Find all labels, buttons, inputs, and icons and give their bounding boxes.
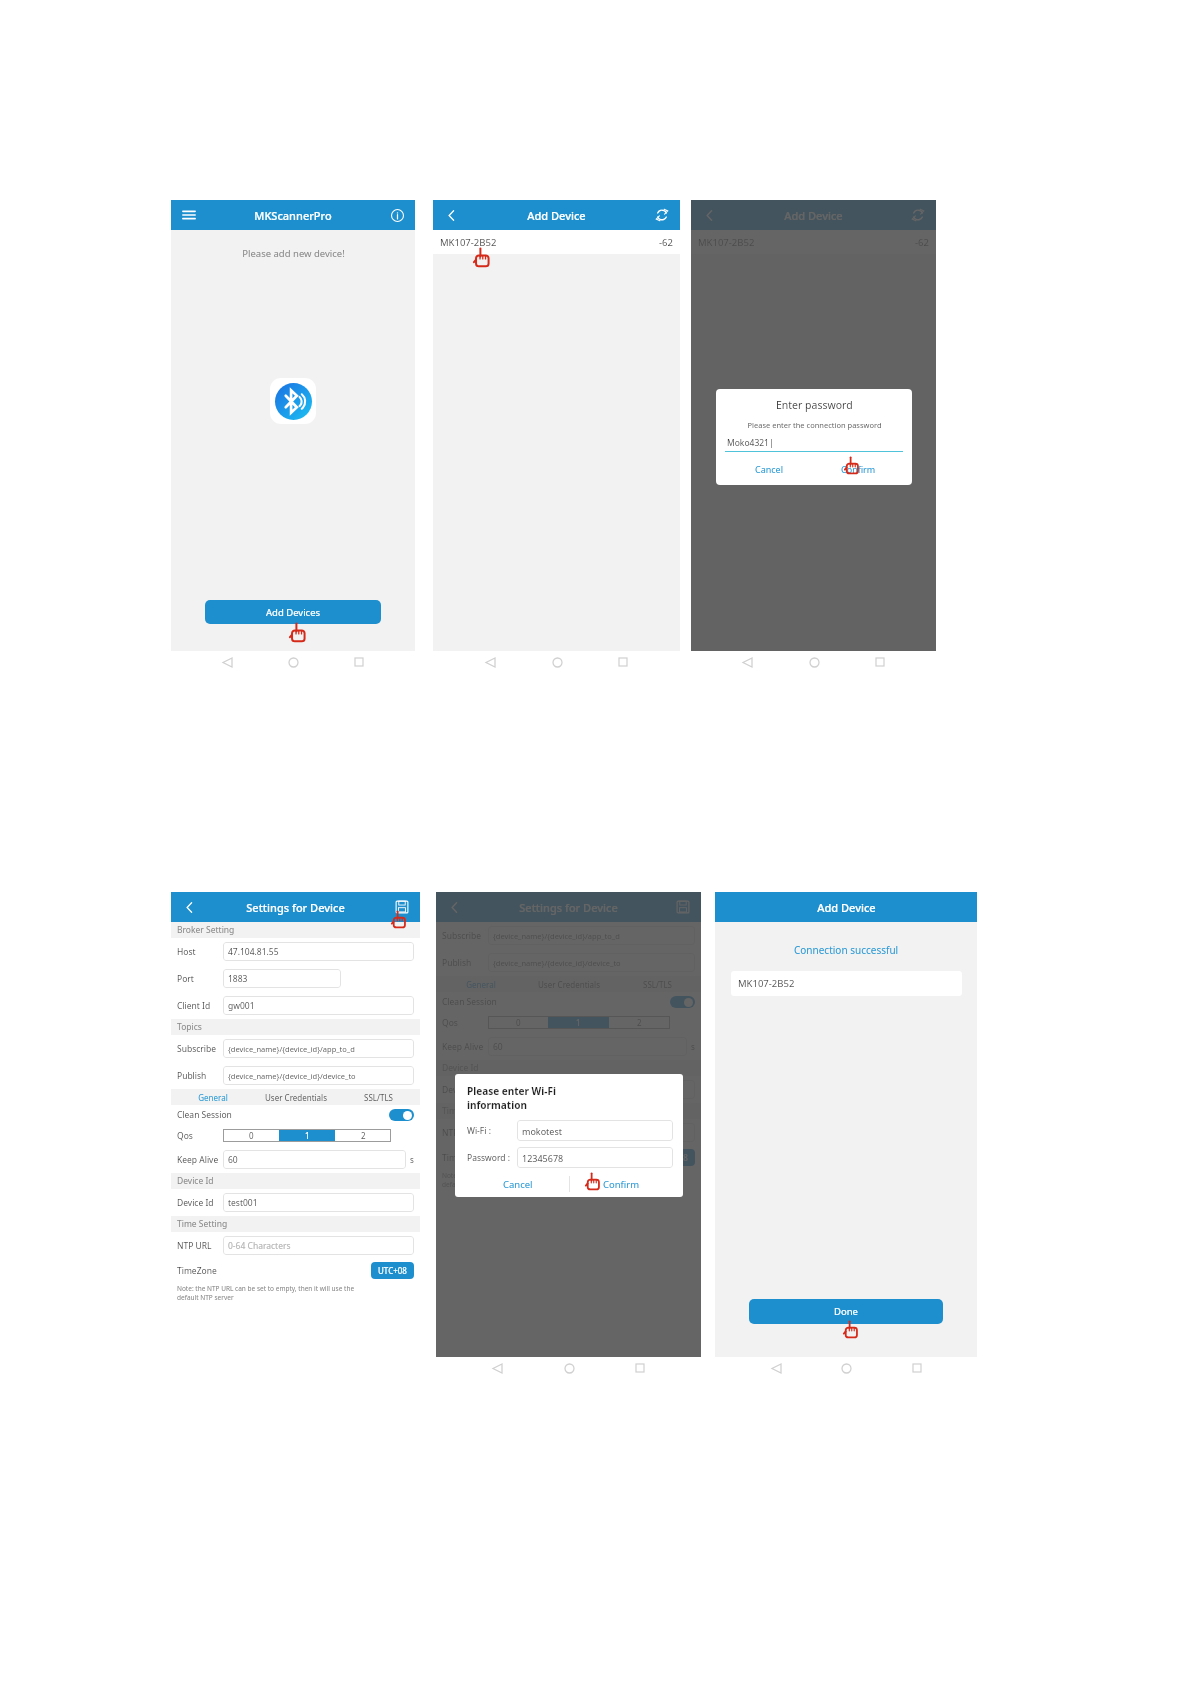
staticText: General [466, 979, 496, 990]
button[interactable]: Back [178, 896, 200, 918]
button[interactable]: Recents [907, 1358, 927, 1378]
button[interactable]: Back [766, 1358, 786, 1378]
button[interactable]: 0 [488, 1016, 548, 1029]
button[interactable]: User Credentials [525, 976, 613, 992]
button[interactable]: Cancel [467, 1176, 569, 1192]
button[interactable]: 12345678 [517, 1147, 673, 1168]
button[interactable]: SSL/TLS [337, 1089, 420, 1105]
staticText: 2 [361, 1130, 366, 1141]
staticText: General [198, 1092, 228, 1103]
staticText: Client Id [177, 1000, 223, 1012]
staticText: 1 [305, 1130, 310, 1141]
button[interactable]: User Credentials [254, 1089, 337, 1105]
button[interactable]: 0-64 Characters [488, 1123, 695, 1142]
staticText: Subscribe [177, 1043, 223, 1055]
button[interactable]: 1 [548, 1016, 609, 1029]
button[interactable]: Clean Session [670, 996, 695, 1008]
staticText: Cancel [503, 1178, 533, 1191]
button[interactable]: General [171, 1089, 254, 1105]
button[interactable]: {device_name}/{device_id}/app_to_d [223, 1039, 414, 1058]
button[interactable]: 0 [223, 1129, 279, 1142]
button[interactable]: UTC+08 [371, 1262, 414, 1279]
button[interactable]: 60 [223, 1150, 406, 1169]
button[interactable]: test001 [488, 1080, 695, 1099]
button[interactable]: {device_name}/{device_id}/app_to_d [488, 926, 695, 945]
button[interactable]: Home [804, 652, 824, 672]
staticText: 2 [637, 1017, 642, 1028]
staticText: Done [834, 1305, 858, 1318]
button[interactable]: Home [559, 1358, 579, 1378]
button[interactable]: Cancel [725, 461, 814, 476]
button[interactable]: MK107-2B52 [433, 230, 680, 254]
staticText: Password : [467, 1152, 517, 1164]
button[interactable]: 2 [609, 1016, 670, 1029]
button[interactable]: 2 [335, 1129, 391, 1142]
staticText: 12345678 [522, 1152, 564, 1164]
staticText: Settings for Device [246, 900, 345, 915]
staticText: Add Device [527, 208, 586, 223]
button[interactable]: 47.104.81.55 [223, 942, 414, 961]
staticText: {device_name}/{device_id}/device_to [493, 958, 621, 968]
button[interactable]: 1883 [223, 969, 341, 988]
button[interactable]: Back [178, 204, 200, 226]
staticText: 1883 [228, 973, 248, 985]
button[interactable]: Clean Session [389, 1109, 414, 1121]
staticText: Publish [442, 957, 488, 969]
staticText: Time Setting [442, 1105, 493, 1117]
staticText: s [691, 1041, 695, 1052]
button[interactable]: Back [440, 204, 462, 226]
button[interactable]: SSL/TLS [613, 976, 701, 992]
staticText: 60 [228, 1154, 238, 1166]
button[interactable]: Home [283, 652, 303, 672]
button[interactable]: Action [907, 204, 929, 226]
staticText: Confirm [841, 463, 876, 475]
button[interactable]: General [436, 976, 525, 992]
button[interactable]: Done [749, 1299, 943, 1324]
button[interactable]: UTC+08 [652, 1149, 695, 1166]
button[interactable]: Back [443, 896, 465, 918]
button[interactable]: Confirm [814, 461, 903, 476]
staticText: 0-64 Characters [228, 1240, 291, 1252]
button[interactable]: Back [698, 204, 720, 226]
button[interactable]: MK107-2B52 [731, 971, 962, 996]
staticText: NTP URL [442, 1127, 488, 1139]
staticText: MK107-2B52 [440, 236, 497, 249]
button[interactable]: Back [480, 652, 500, 672]
button[interactable]: Recents [870, 652, 890, 672]
button[interactable]: {device_name}/{device_id}/device_to [223, 1066, 414, 1085]
staticText: Keep Alive [442, 1041, 488, 1053]
staticText: Note: the NTP URL can be set to empty, t… [442, 1171, 620, 1189]
staticText: SSL/TLS [643, 979, 672, 990]
button[interactable]: Recents [349, 652, 369, 672]
button[interactable]: 0-64 Characters [223, 1236, 414, 1255]
staticText: UTC+08 [659, 1152, 688, 1163]
staticText: Enter password [776, 398, 853, 412]
button[interactable]: Action [386, 204, 408, 226]
button[interactable]: Action [651, 204, 673, 226]
staticText: NTP URL [177, 1240, 223, 1252]
button[interactable]: Confirm [570, 1176, 673, 1192]
button[interactable]: 1 [279, 1129, 335, 1142]
button[interactable]: Back [737, 652, 757, 672]
staticText: {device_name}/{device_id}/app_to_d [493, 931, 620, 941]
button[interactable]: gw001 [223, 996, 414, 1015]
button[interactable]: {device_name}/{device_id}/device_to [488, 953, 695, 972]
button[interactable]: Recents [630, 1358, 650, 1378]
staticText: Publish [177, 1070, 223, 1082]
staticText: Keep Alive [177, 1154, 223, 1166]
button[interactable]: Add Devices [205, 600, 381, 624]
button[interactable]: Action [391, 896, 413, 918]
staticText: 0-64 Characters [493, 1127, 556, 1139]
button[interactable]: Home [547, 652, 567, 672]
button[interactable]: mokotest [517, 1120, 673, 1141]
button[interactable]: Back [217, 652, 237, 672]
button[interactable]: Recents [613, 652, 633, 672]
button[interactable]: Home [836, 1358, 856, 1378]
staticText: -62 [915, 236, 929, 249]
button[interactable]: Action [672, 896, 694, 918]
button[interactable]: Back [487, 1358, 507, 1378]
button[interactable]: test001 [223, 1193, 414, 1212]
staticText: {device_name}/{device_id}/device_to [228, 1071, 356, 1081]
staticText: Host [177, 946, 223, 958]
